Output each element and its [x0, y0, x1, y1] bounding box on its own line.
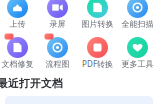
button[interactable] — [87, 37, 108, 58]
button[interactable] — [47, 37, 68, 58]
staticText: 最近打开文档 — [0, 77, 63, 90]
button[interactable] — [7, 0, 28, 18]
button[interactable] — [87, 0, 108, 18]
button[interactable] — [127, 37, 148, 58]
staticText: 文档修复 — [1, 59, 33, 69]
button[interactable] — [127, 0, 148, 18]
staticText: 录屏 — [49, 19, 65, 29]
staticText: 上传 — [9, 19, 25, 29]
staticText: 流程图 — [45, 59, 69, 69]
staticText: 更多工具 — [121, 59, 153, 69]
staticText: 图片转换 — [81, 19, 113, 29]
button[interactable] — [47, 0, 68, 18]
staticText: 全能扫描 — [121, 19, 153, 29]
staticText: PDF转换 — [82, 59, 113, 69]
button[interactable] — [7, 37, 28, 58]
